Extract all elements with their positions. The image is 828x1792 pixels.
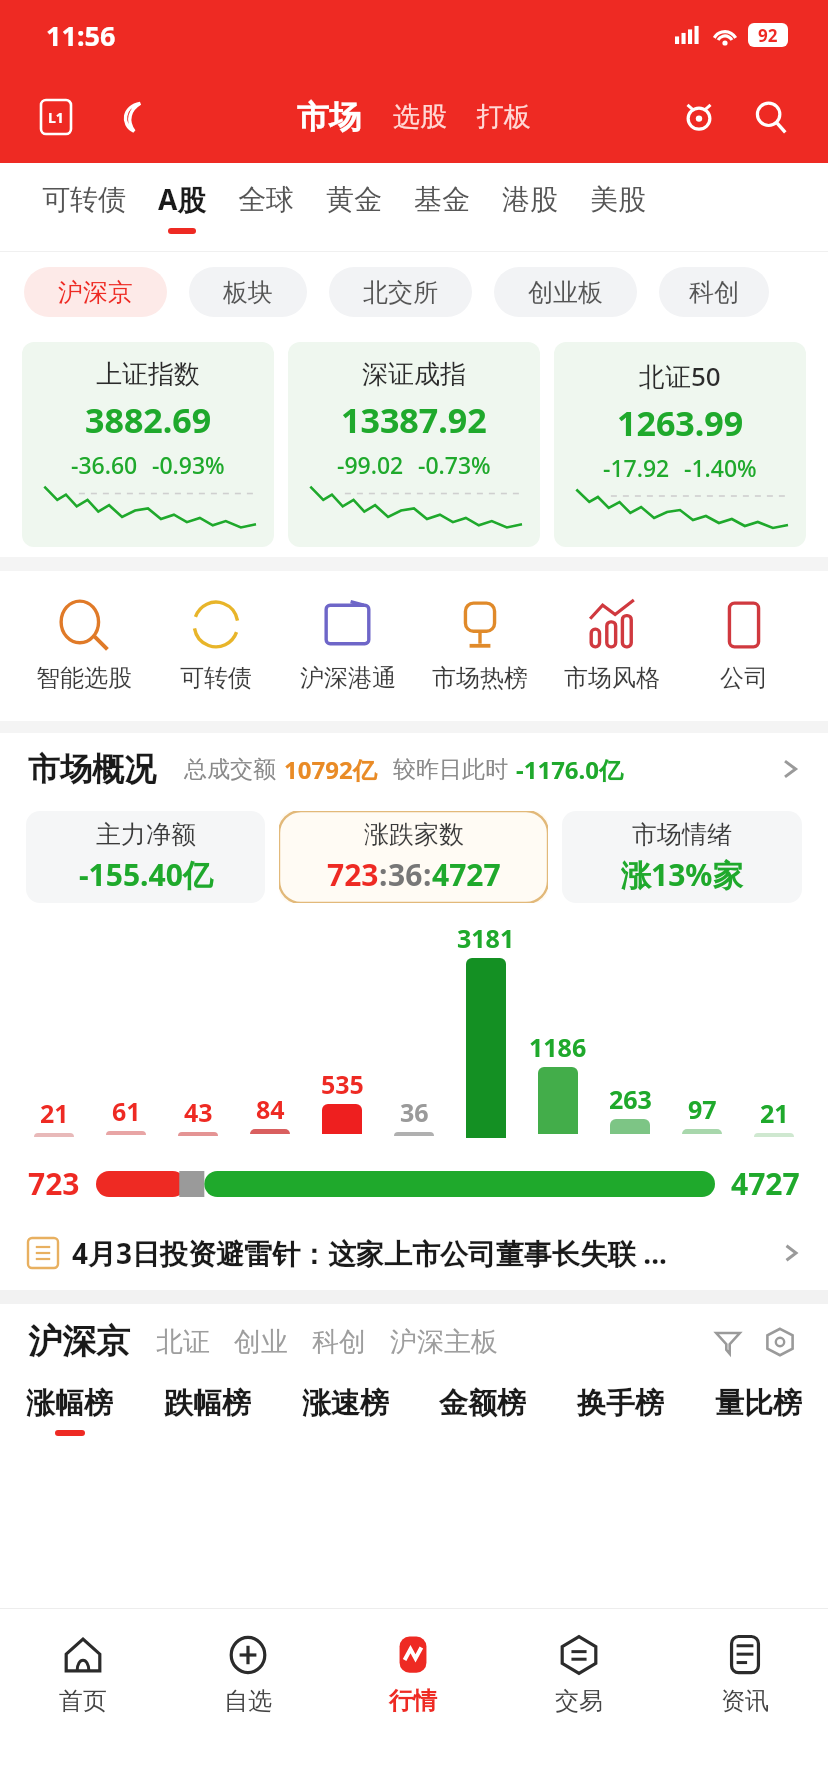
staticText: 92 [758, 24, 778, 47]
button[interactable]: 黄金 [310, 182, 398, 233]
button[interactable]: 北交所 [329, 267, 472, 317]
button[interactable]: 上证指数 [22, 342, 274, 547]
staticText: 北证50 [639, 358, 721, 394]
button[interactable]: 全球 [222, 182, 310, 233]
staticText: 智能选股 [36, 663, 132, 693]
staticText: 科创 [689, 277, 739, 308]
staticText: 沪深京 [58, 277, 133, 308]
staticText: 11:56 [46, 17, 116, 54]
button[interactable]: 科创 [312, 1325, 366, 1359]
button[interactable]: 沪深京 [28, 1320, 130, 1363]
button[interactable]: 行情 [330, 1609, 496, 1734]
button[interactable]: 交易 [496, 1609, 662, 1734]
button[interactable]: 选股 [393, 100, 447, 134]
button[interactable]: 涨幅榜 [26, 1385, 113, 1436]
button[interactable]: 北证 [156, 1325, 210, 1359]
button[interactable]: 资讯 [662, 1609, 828, 1734]
staticText: 1263.99 [617, 400, 744, 446]
button[interactable]: 北证50 [554, 342, 806, 547]
button[interactable]: 市场情绪 [562, 811, 802, 903]
button[interactable]: 市场 [297, 97, 361, 137]
staticText: 市场风格 [564, 663, 660, 693]
staticText: 自选 [224, 1686, 272, 1716]
staticText: 换手榜 [577, 1385, 664, 1422]
staticText: 36 [388, 854, 423, 895]
staticText: 1186 [529, 1030, 587, 1064]
staticText: 263 [609, 1082, 652, 1116]
button[interactable]: 涨跌家数 [279, 811, 548, 903]
button[interactable]: 美股 [574, 182, 662, 233]
staticText: 涨13%家 [621, 854, 743, 895]
staticText: 3181 [457, 921, 515, 955]
button[interactable]: 沪深京 [24, 267, 167, 317]
staticText: 4727 [731, 1163, 800, 1204]
button[interactable]: 沪深港通 [282, 599, 414, 693]
staticText: 61 [112, 1094, 141, 1128]
staticText: 港股 [502, 182, 558, 217]
staticText: 21 [40, 1096, 69, 1130]
staticText: 84 [256, 1092, 285, 1126]
staticText: 美股 [590, 182, 646, 217]
button[interactable]: 深证成指 [288, 342, 540, 547]
button[interactable]: 主力净额 [26, 811, 265, 903]
button[interactable]: 板块 [189, 267, 307, 317]
staticText: 资讯 [721, 1686, 769, 1716]
button[interactable]: 金额榜 [439, 1385, 526, 1436]
button[interactable]: Night mode [108, 95, 152, 139]
staticText: 13387.92 [341, 397, 487, 443]
staticText: 21 [760, 1096, 789, 1130]
staticText: 市场热榜 [432, 663, 528, 693]
staticText: 金额榜 [439, 1385, 526, 1422]
staticText: 量比榜 [715, 1385, 802, 1422]
button[interactable]: Settings [760, 1322, 800, 1362]
button[interactable]: 智能选股 [18, 599, 150, 693]
button[interactable]: 涨速榜 [302, 1385, 389, 1436]
button[interactable]: 创业 [234, 1325, 288, 1359]
staticText: 可转债 [180, 663, 252, 693]
button[interactable]: 自选 [165, 1609, 330, 1734]
staticText: 涨跌家数 [364, 819, 464, 850]
button[interactable]: Level 1 [34, 95, 78, 139]
button[interactable]: 科创 [659, 267, 769, 317]
button[interactable]: 沪深主板 [390, 1325, 498, 1359]
button[interactable]: 可转债 [26, 182, 142, 233]
button[interactable]: Filter [708, 1322, 748, 1362]
button[interactable]: 打板 [477, 100, 531, 134]
button[interactable]: 可转债 [150, 599, 282, 693]
button[interactable]: 港股 [486, 182, 574, 233]
button[interactable]: Search [748, 94, 794, 140]
staticText: 97 [688, 1092, 717, 1126]
staticText: 723 [28, 1163, 80, 1204]
staticText: 涨幅榜 [26, 1385, 113, 1422]
button[interactable]: 市场概况 [28, 749, 800, 789]
button[interactable]: 换手榜 [577, 1385, 664, 1436]
button[interactable]: 量比榜 [715, 1385, 802, 1436]
button[interactable]: 创业板 [494, 267, 637, 317]
button[interactable]: 市场风格 [546, 599, 678, 693]
button[interactable]: 市场热榜 [414, 599, 546, 693]
staticText: 市场情绪 [632, 819, 732, 850]
staticText: : [423, 854, 432, 895]
button[interactable]: 公司 [678, 599, 810, 693]
button[interactable]: 4月3日投资避雷针：这家上市公司董事长失联 ... [28, 1222, 800, 1284]
staticText: 4月3日投资避雷针：这家上市公司董事长失联 ... [72, 1234, 667, 1272]
staticText: -99.02 [337, 449, 404, 480]
staticText: 板块 [223, 277, 273, 308]
staticText: 主力净额 [96, 819, 196, 850]
button[interactable]: 基金 [398, 182, 486, 233]
staticText: 市场概况 [28, 749, 156, 789]
staticText: -0.73% [418, 449, 491, 480]
button[interactable]: Alerts [676, 94, 722, 140]
button[interactable]: A股 [142, 180, 222, 234]
button[interactable]: 跌幅榜 [164, 1385, 251, 1436]
button[interactable]: 首页 [0, 1609, 165, 1734]
